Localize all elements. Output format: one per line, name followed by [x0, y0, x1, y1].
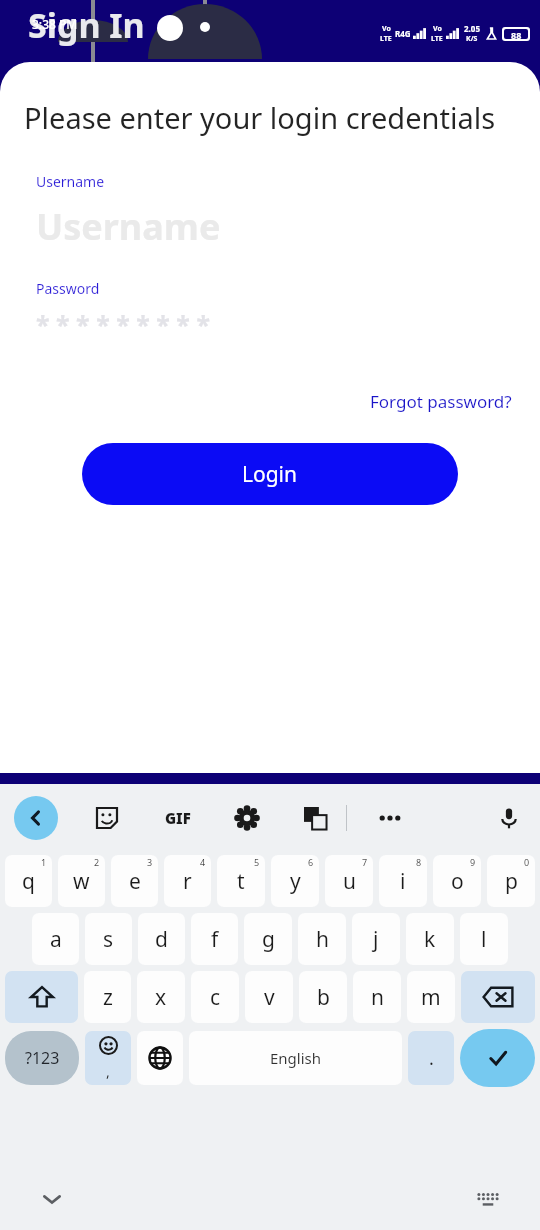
- button[interactable]: k: [406, 913, 454, 965]
- staticText: z: [103, 983, 113, 1012]
- button[interactable]: r: [164, 855, 211, 907]
- staticText: 3:38 PM: [32, 16, 78, 32]
- staticText: d: [155, 925, 168, 954]
- button[interactable]: q: [5, 855, 52, 907]
- staticText: a: [50, 925, 62, 954]
- button[interactable]: Backspace: [461, 971, 535, 1023]
- staticText: LTE: [380, 34, 392, 44]
- staticText: ,: [106, 1062, 110, 1081]
- staticText: o: [451, 867, 464, 896]
- button[interactable]: d: [138, 913, 185, 965]
- staticText: 6: [308, 856, 314, 868]
- staticText: p: [505, 867, 518, 896]
- staticText: y: [290, 867, 301, 896]
- button[interactable]: * * * * * * * * *: [24, 306, 516, 342]
- button[interactable]: .: [408, 1031, 454, 1085]
- staticText: w: [73, 867, 90, 896]
- button[interactable]: p: [487, 855, 535, 907]
- button[interactable]: Login: [82, 443, 458, 505]
- staticText: Vo: [382, 24, 391, 34]
- button[interactable]: Settings: [230, 801, 264, 835]
- staticText: r: [183, 867, 192, 896]
- button[interactable]: Forgot password?: [366, 386, 516, 417]
- staticText: 2: [94, 856, 100, 868]
- button[interactable]: Stickers: [90, 801, 124, 835]
- staticText: 1: [41, 856, 47, 868]
- button[interactable]: x: [137, 971, 185, 1023]
- staticText: 88: [511, 29, 522, 39]
- button[interactable]: Emoji: [85, 1031, 131, 1085]
- staticText: Login: [242, 460, 298, 489]
- staticText: u: [343, 867, 356, 896]
- staticText: 2.05: [464, 23, 480, 34]
- staticText: Username: [36, 172, 105, 191]
- button[interactable]: o: [433, 855, 481, 907]
- staticText: q: [22, 867, 35, 896]
- staticText: j: [373, 925, 379, 954]
- staticText: n: [371, 983, 384, 1012]
- button[interactable]: c: [191, 971, 239, 1023]
- staticText: e: [129, 867, 141, 896]
- button[interactable]: i: [379, 855, 427, 907]
- staticText: 0: [524, 856, 530, 868]
- staticText: Vo: [433, 24, 442, 34]
- button[interactable]: e: [111, 855, 158, 907]
- button[interactable]: l: [460, 913, 508, 965]
- button[interactable]: Translate: [298, 801, 332, 835]
- staticText: Forgot password?: [370, 390, 512, 413]
- button[interactable]: y: [271, 855, 319, 907]
- staticText: English: [270, 1048, 322, 1068]
- button[interactable]: m: [407, 971, 455, 1023]
- button[interactable]: Back: [14, 796, 58, 840]
- button[interactable]: h: [298, 913, 346, 965]
- staticText: x: [155, 983, 167, 1012]
- staticText: 4: [200, 856, 206, 868]
- staticText: R4G: [395, 28, 411, 39]
- staticText: Username: [36, 202, 221, 251]
- button[interactable]: s: [85, 913, 132, 965]
- button[interactable]: GIF: [160, 800, 196, 836]
- button[interactable]: z: [84, 971, 131, 1023]
- staticText: Password: [36, 279, 100, 298]
- staticText: t: [237, 867, 245, 896]
- button[interactable]: Hide keyboard: [34, 1181, 70, 1217]
- staticText: GIF: [165, 808, 191, 828]
- staticText: 7: [362, 856, 368, 868]
- staticText: l: [481, 925, 487, 954]
- button[interactable]: English: [189, 1031, 402, 1085]
- staticText: LTE: [431, 34, 443, 44]
- button[interactable]: g: [244, 913, 292, 965]
- button[interactable]: a: [32, 913, 79, 965]
- button[interactable]: w: [58, 855, 105, 907]
- staticText: 9: [470, 856, 476, 868]
- staticText: v: [264, 983, 275, 1012]
- button[interactable]: Shift: [5, 971, 78, 1023]
- button[interactable]: f: [191, 913, 238, 965]
- button[interactable]: n: [353, 971, 401, 1023]
- staticText: i: [400, 867, 406, 896]
- button[interactable]: u: [325, 855, 373, 907]
- button[interactable]: ?123: [5, 1031, 79, 1085]
- button[interactable]: Switch keyboard: [470, 1181, 506, 1217]
- button[interactable]: Username: [24, 197, 516, 255]
- button[interactable]: b: [299, 971, 347, 1023]
- staticText: c: [210, 983, 221, 1012]
- staticText: Please enter your login credentials: [24, 98, 496, 137]
- staticText: 8: [416, 856, 422, 868]
- staticText: .: [429, 1046, 434, 1071]
- button[interactable]: j: [352, 913, 400, 965]
- staticText: K/S: [466, 34, 478, 44]
- staticText: 3: [147, 856, 153, 868]
- staticText: h: [316, 925, 329, 954]
- staticText: b: [317, 983, 330, 1012]
- staticText: * * * * * * * * *: [36, 307, 210, 341]
- button[interactable]: v: [245, 971, 293, 1023]
- button[interactable]: Voice input: [492, 801, 526, 835]
- staticText: k: [424, 925, 436, 954]
- button[interactable]: Enter: [460, 1029, 535, 1087]
- staticText: m: [421, 983, 441, 1012]
- button[interactable]: More options: [373, 801, 407, 835]
- staticText: Sign In: [28, 2, 145, 48]
- button[interactable]: t: [217, 855, 265, 907]
- button[interactable]: Change language: [137, 1031, 183, 1085]
